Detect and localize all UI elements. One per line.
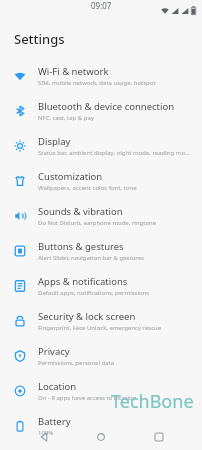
- button[interactable]: Location: [0, 373, 202, 408]
- button[interactable]: Recent apps: [145, 424, 173, 450]
- staticText: Customization: [38, 170, 103, 183]
- staticText: Permissions, personal data: [38, 359, 115, 367]
- button[interactable]: Back: [30, 424, 58, 450]
- staticText: 09:07: [91, 0, 112, 11]
- staticText: Security & lock screen: [38, 310, 136, 323]
- button[interactable]: Customization: [0, 163, 202, 198]
- staticText: Settings: [14, 30, 65, 48]
- button[interactable]: Privacy: [0, 338, 202, 373]
- button[interactable]: Display: [0, 128, 202, 163]
- staticText: Privacy: [38, 345, 70, 358]
- button[interactable]: Bluetooth & device connection: [0, 93, 202, 128]
- staticText: Alert Slider, navigation bar & gestures: [38, 254, 144, 262]
- button[interactable]: Apps & notifications: [0, 268, 202, 303]
- button[interactable]: Buttons & gestures: [0, 233, 202, 268]
- staticText: Location: [38, 380, 77, 393]
- staticText: Fingerprint, Face Unlock, emergency resc…: [38, 324, 162, 332]
- button[interactable]: Battery: [0, 408, 202, 443]
- staticText: Battery: [38, 415, 71, 428]
- staticText: Default apps, notifications, permissions: [38, 289, 150, 297]
- button[interactable]: Security & lock screen: [0, 303, 202, 338]
- staticText: Bluetooth & device connection: [38, 100, 175, 113]
- staticText: Display: [38, 135, 71, 148]
- staticText: Buttons & gestures: [38, 240, 124, 253]
- button[interactable]: Home: [87, 424, 115, 450]
- button[interactable]: Wi-Fi & network: [0, 58, 202, 93]
- staticText: Wallpapers, accent color, font, tone: [38, 184, 137, 192]
- staticText: Apps & notifications: [38, 275, 128, 288]
- staticText: Do Not Disturb, earphone mode, ringtone: [38, 219, 157, 227]
- staticText: NFC, cast, tap & pay: [38, 114, 94, 122]
- staticText: 100%: [38, 429, 54, 437]
- staticText: Sounds & vibration: [38, 205, 123, 218]
- staticText: Wi-Fi & network: [38, 65, 109, 78]
- staticText: On - 8 apps have access to location: [38, 394, 137, 402]
- button[interactable]: Sounds & vibration: [0, 198, 202, 233]
- staticText: SIM, mobile network, data usage, hotspot: [38, 79, 156, 87]
- staticText: TechBone: [111, 389, 194, 414]
- staticText: Status bar, ambient display, night mode,…: [38, 149, 192, 157]
